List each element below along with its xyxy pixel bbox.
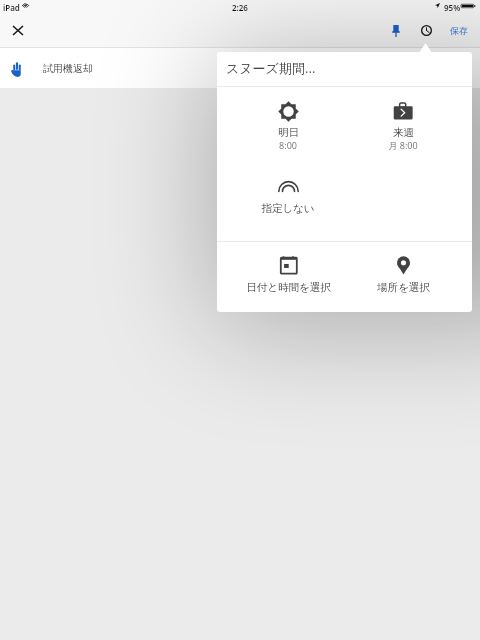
staticText: 場所を選択 bbox=[377, 281, 430, 294]
button[interactable]: Reminder bbox=[412, 16, 440, 44]
button[interactable]: 来週 bbox=[347, 101, 459, 151]
staticText: 明日 bbox=[278, 126, 299, 139]
button[interactable]: 日付と時間を選択 bbox=[232, 256, 344, 294]
staticText: iPad bbox=[3, 2, 20, 13]
staticText: 2:26 bbox=[232, 2, 248, 13]
button[interactable]: 保存 bbox=[444, 16, 474, 44]
staticText: 試用機返却 bbox=[43, 62, 93, 75]
button[interactable]: Close bbox=[4, 16, 32, 44]
staticText: 日付と時間を選択 bbox=[246, 281, 331, 294]
button[interactable]: 明日 bbox=[232, 101, 344, 151]
button[interactable]: 試用機返却 bbox=[0, 48, 480, 88]
staticText: 月 8:00 bbox=[388, 139, 418, 151]
staticText: 来週 bbox=[393, 126, 414, 139]
staticText: 8:00 bbox=[279, 139, 297, 151]
staticText: 保存 bbox=[450, 25, 468, 36]
staticText: 95% bbox=[444, 2, 461, 13]
button[interactable]: Pin note bbox=[383, 16, 411, 44]
staticText: 指定しない bbox=[261, 202, 315, 215]
button[interactable]: 場所を選択 bbox=[347, 256, 459, 294]
button[interactable]: 指定しない bbox=[232, 177, 344, 215]
button[interactable]: スヌーズ期間... bbox=[226, 59, 316, 77]
